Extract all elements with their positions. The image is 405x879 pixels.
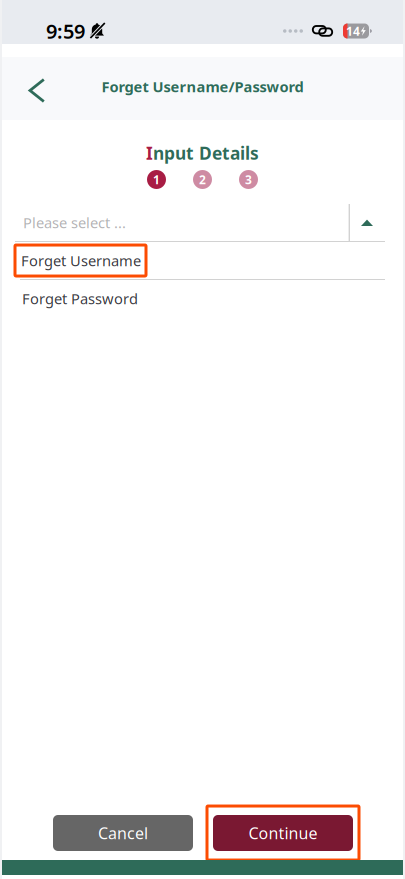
staticText: Please select ... [23,213,126,232]
button[interactable]: Continue [207,806,359,860]
staticText: Forget Username [21,251,141,270]
staticText: Cancel [98,822,148,844]
staticText: Continue [248,822,317,844]
staticText: 14 [346,23,360,39]
button[interactable]: Forget Password [0,280,405,317]
button[interactable]: Cancel [53,815,193,851]
staticText: 3 [245,171,252,187]
staticText: 9:59 [46,18,85,44]
button[interactable]: Please select ... [0,204,405,242]
staticText: 2 [199,171,206,187]
button[interactable]: Forget Username [0,242,405,280]
staticText: 1 [153,171,160,187]
staticText: Forget Password [22,289,138,308]
staticText: nput Details [153,141,259,164]
button[interactable]: Back [0,63,60,113]
staticText: I [146,141,153,164]
staticText: Forget Username/Password [101,77,303,96]
